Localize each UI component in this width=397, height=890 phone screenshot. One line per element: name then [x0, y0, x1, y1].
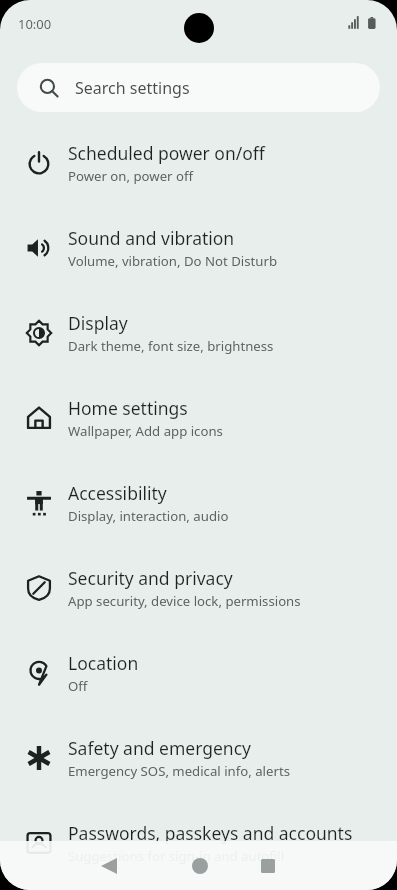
staticText: Emergency SOS, medical info, alerts — [68, 762, 290, 780]
staticText: Display, interaction, audio — [68, 507, 229, 525]
staticText: Off — [68, 677, 88, 695]
staticText: Accessibility — [68, 481, 167, 505]
button[interactable]: Security and privacy — [0, 561, 397, 646]
button[interactable]: Sound and vibration — [0, 221, 397, 306]
button[interactable]: Home settings — [0, 391, 397, 476]
button[interactable]: Home — [183, 849, 217, 883]
staticText: App security, device lock, permissions — [68, 592, 301, 610]
button[interactable]: Back — [92, 849, 126, 883]
button[interactable]: Search settings — [17, 63, 380, 112]
button[interactable]: Safety and emergency — [0, 731, 397, 816]
staticText: Display — [68, 311, 128, 335]
staticText: Security and privacy — [68, 566, 233, 590]
staticText: Safety and emergency — [68, 736, 251, 760]
staticText: Search settings — [75, 77, 190, 99]
staticText: Power on, power off — [68, 167, 194, 185]
staticText: Home settings — [68, 396, 188, 420]
staticText: Scheduled power on/off — [68, 141, 265, 165]
staticText: Dark theme, font size, brightness — [68, 337, 274, 355]
button[interactable]: Recent apps — [251, 849, 285, 883]
staticText: Volume, vibration, Do Not Disturb — [68, 252, 277, 270]
button[interactable]: Display — [0, 306, 397, 391]
staticText: Location — [68, 651, 139, 675]
staticText: Wallpaper, Add app icons — [68, 422, 223, 440]
button[interactable]: Passwords, passkeys and accounts — [0, 816, 397, 890]
staticText: Suggestions for sign-in and autofill — [68, 847, 285, 865]
staticText: Passwords, passkeys and accounts — [68, 821, 353, 845]
button[interactable]: Scheduled power on/off — [0, 136, 397, 221]
staticText: Sound and vibration — [68, 226, 235, 250]
button[interactable]: Accessibility — [0, 476, 397, 561]
staticText: 10:00 — [18, 15, 52, 33]
button[interactable]: Location — [0, 646, 397, 731]
